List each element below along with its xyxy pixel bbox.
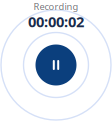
button[interactable]: Pause recording [35, 44, 76, 85]
staticText: Recording [33, 0, 78, 13]
staticText: 00:00:02 [28, 12, 84, 31]
